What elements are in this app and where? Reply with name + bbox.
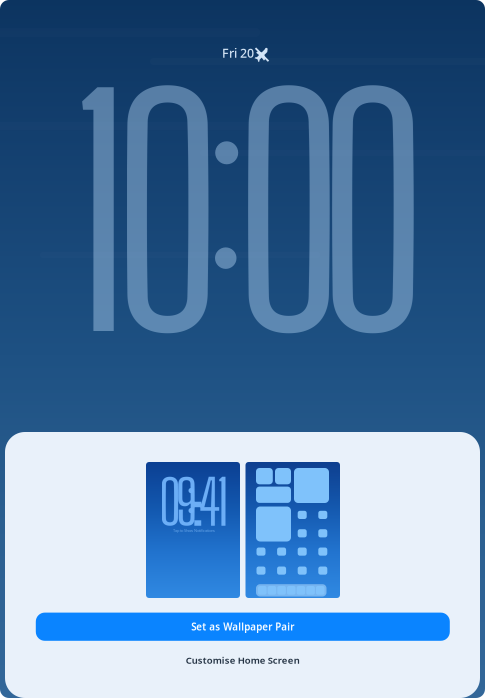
staticText: 0 bbox=[111, 31, 225, 396]
staticText: Customise Home Screen bbox=[186, 654, 300, 666]
staticText: 1 bbox=[69, 31, 130, 396]
button[interactable]: Customise Home Screen bbox=[36, 645, 450, 675]
staticText: Tap to Show Notifications bbox=[173, 528, 215, 533]
staticText: Fri 20 bbox=[222, 45, 254, 61]
staticText: 09:41 bbox=[158, 465, 228, 539]
staticText: 00 bbox=[232, 31, 430, 396]
button[interactable]: Set as Wallpaper Pair bbox=[36, 613, 450, 641]
staticText: Set as Wallpaper Pair bbox=[191, 620, 294, 633]
